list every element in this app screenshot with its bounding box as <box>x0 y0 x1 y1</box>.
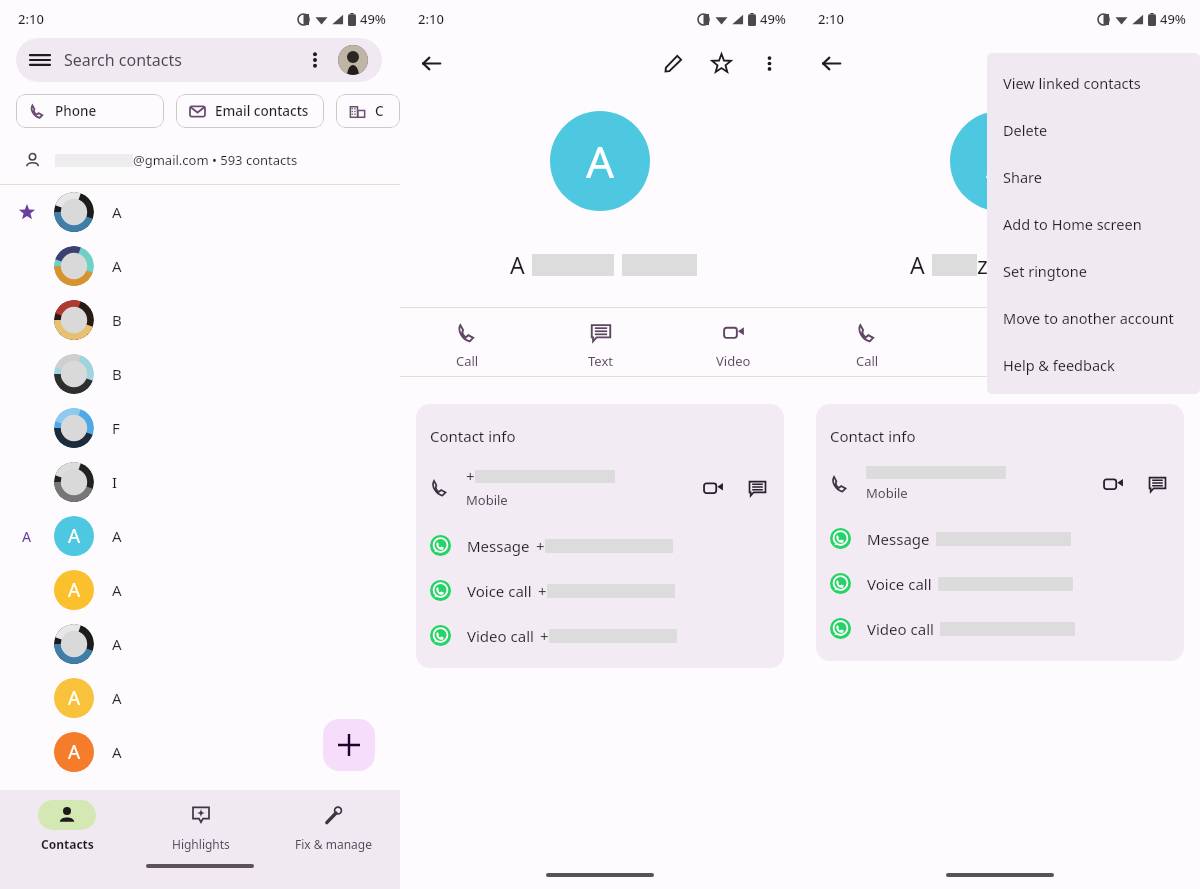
button[interactable]: Video call <box>830 618 1170 639</box>
staticText: Set ringtone <box>1003 261 1087 281</box>
button[interactable]: Edit <box>656 46 690 80</box>
button[interactable]: Message <box>830 528 1170 549</box>
staticText: A <box>22 527 32 546</box>
staticText: I <box>112 472 118 492</box>
staticText: @gmail.com • 593 contacts <box>133 151 298 169</box>
staticText: Search contacts <box>64 49 182 71</box>
button[interactable]: Back <box>414 46 448 80</box>
button[interactable]: Voice call <box>830 573 1170 594</box>
button[interactable]: Send message <box>1144 471 1170 497</box>
staticText: Contact info <box>830 426 916 446</box>
button[interactable]: Create contact <box>323 719 375 771</box>
button[interactable]: Search contacts <box>16 38 382 82</box>
staticText: A <box>112 580 122 600</box>
staticText: 2:10 <box>818 10 844 28</box>
staticText: A <box>68 577 81 603</box>
staticText: B <box>112 364 122 384</box>
button[interactable]: A <box>0 617 400 671</box>
button[interactable]: @gmail.com • 593 contacts <box>0 144 400 176</box>
button[interactable]: Video <box>1067 308 1200 376</box>
staticText: A <box>68 523 81 549</box>
button[interactable]: Email contacts <box>176 94 324 128</box>
staticText: 2:10 <box>418 10 444 28</box>
staticText: A <box>510 249 525 280</box>
button[interactable]: Call <box>800 308 934 376</box>
button[interactable]: Message <box>430 535 770 556</box>
staticText: 49% <box>1160 10 1186 28</box>
button[interactable]: Video call <box>700 475 726 501</box>
button[interactable]: A <box>0 671 400 725</box>
button[interactable]: Phone contacts <box>16 94 164 128</box>
button[interactable]: Share <box>987 153 1200 200</box>
button[interactable]: + <box>430 466 770 509</box>
staticText: + <box>536 536 545 556</box>
button[interactable]: Text <box>934 308 1067 376</box>
button[interactable]: B <box>0 347 400 401</box>
button[interactable]: Voice call <box>430 580 770 601</box>
staticText: A <box>112 688 122 708</box>
staticText: F <box>112 418 120 438</box>
staticText: Phone contacts <box>55 102 151 120</box>
staticText: + <box>540 626 549 646</box>
staticText: View linked contacts <box>1003 73 1141 93</box>
button[interactable]: Send message <box>744 475 770 501</box>
staticText: Message <box>867 529 930 549</box>
button[interactable]: Video call <box>1100 471 1126 497</box>
button[interactable]: Call <box>400 308 534 376</box>
button[interactable]: Text <box>534 308 667 376</box>
button[interactable]: More options <box>752 46 786 80</box>
button[interactable]: Contacts <box>0 790 134 858</box>
button[interactable]: A <box>0 563 400 617</box>
button[interactable]: Fix & manage <box>267 790 400 858</box>
staticText: Mobile <box>466 491 508 509</box>
button[interactable]: A <box>0 725 400 779</box>
button[interactable]: View linked contacts <box>987 59 1200 106</box>
staticText: Voice call <box>867 574 932 594</box>
staticText: A <box>910 249 925 280</box>
staticText: A <box>68 685 81 711</box>
staticText: A <box>112 742 122 762</box>
staticText: A <box>112 256 122 276</box>
staticText: Delete <box>1003 120 1048 140</box>
button[interactable]: Mobile <box>830 466 1170 502</box>
button[interactable]: A <box>0 509 400 563</box>
staticText: Call <box>456 352 479 370</box>
staticText: A <box>112 634 122 654</box>
button[interactable]: More options <box>304 49 326 71</box>
button[interactable]: Back <box>814 46 848 80</box>
button[interactable]: I <box>0 455 400 509</box>
button[interactable]: Favorite <box>704 46 738 80</box>
staticText: Email contacts <box>215 102 309 120</box>
staticText: Call <box>856 352 879 370</box>
staticText: A <box>112 202 122 222</box>
button[interactable]: A <box>0 239 400 293</box>
staticText: A <box>986 131 1015 191</box>
button[interactable]: F <box>0 401 400 455</box>
button[interactable]: Add to Home screen <box>987 200 1200 247</box>
staticText: Text <box>588 352 613 370</box>
staticText: Help & feedback <box>1003 355 1115 375</box>
staticText: Fix & manage <box>295 836 372 852</box>
button[interactable]: Help & feedback <box>987 341 1200 388</box>
staticText: 49% <box>760 10 786 28</box>
staticText: + <box>538 581 547 601</box>
button[interactable]: Companies <box>336 94 400 128</box>
button[interactable]: Delete <box>987 106 1200 153</box>
button[interactable]: Highlights <box>134 790 267 858</box>
staticText: Add to Home screen <box>1003 214 1142 234</box>
staticText: Contacts <box>41 836 94 852</box>
button[interactable]: Video call <box>430 625 770 646</box>
button[interactable]: Set ringtone <box>987 247 1200 294</box>
button[interactable]: Move to another account <box>987 294 1200 341</box>
button[interactable]: B <box>0 293 400 347</box>
button[interactable]: A <box>0 185 400 239</box>
staticText: + <box>466 466 475 486</box>
staticText: 49% <box>360 10 386 28</box>
button[interactable]: Account <box>338 45 368 75</box>
staticText: B <box>112 310 122 330</box>
button[interactable]: Video <box>667 308 800 376</box>
staticText: Video call <box>467 626 534 646</box>
staticText: Voice call <box>467 581 532 601</box>
staticText: Video <box>716 352 751 370</box>
